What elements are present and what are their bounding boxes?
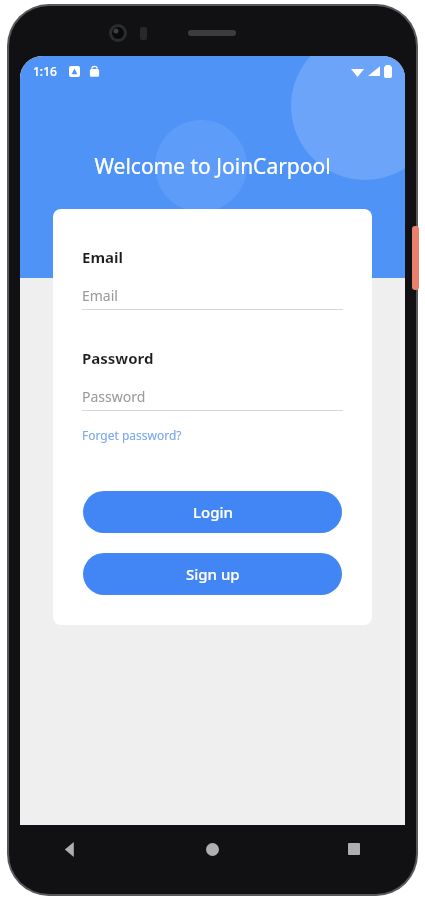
button[interactable]: Recent apps bbox=[283, 825, 425, 873]
staticText: Sign up bbox=[186, 564, 240, 584]
staticText: Welcome to JoinCarpool bbox=[94, 152, 331, 181]
button[interactable]: Forget password? bbox=[82, 424, 182, 446]
staticText: Email bbox=[82, 286, 118, 305]
button[interactable]: Login bbox=[83, 491, 342, 533]
other: Power bbox=[412, 226, 419, 290]
staticText: Password bbox=[82, 387, 146, 406]
button[interactable]: Home bbox=[141, 825, 283, 873]
button[interactable]: Sign up bbox=[83, 553, 342, 595]
button[interactable]: Password bbox=[82, 382, 343, 410]
button[interactable]: Email bbox=[82, 281, 343, 309]
button[interactable]: Back bbox=[0, 825, 141, 873]
staticText: Forget password? bbox=[82, 427, 182, 443]
staticText: Login bbox=[193, 502, 233, 522]
staticText: 1:16 bbox=[33, 63, 57, 79]
staticText: Email bbox=[82, 247, 123, 267]
staticText: Password bbox=[82, 348, 154, 368]
